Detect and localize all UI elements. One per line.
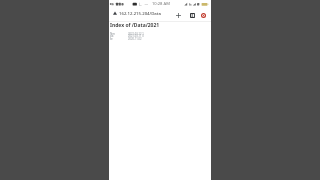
button[interactable]: Nm xyxy=(109,32,211,36)
staticText: 10:28 AM xyxy=(152,1,170,7)
staticText: 2021-03-11 0 xyxy=(128,34,144,38)
staticText: Nm xyxy=(110,32,115,36)
button[interactable]: Switch tabs xyxy=(188,11,197,20)
button[interactable]: New tab xyxy=(174,11,183,20)
staticText: te xyxy=(110,37,113,41)
button[interactable]: Search or type URL xyxy=(111,10,181,16)
staticText: 2021-03-12 1 xyxy=(128,32,144,36)
button[interactable]: pa xyxy=(109,34,211,38)
staticText: 2020-11-02 xyxy=(128,37,142,41)
button[interactable]: te xyxy=(109,37,211,41)
staticText: Index of /Data/2021 xyxy=(110,22,160,29)
staticText: pa xyxy=(110,34,114,38)
staticText: 162.12.215.204/Data xyxy=(119,10,161,16)
button[interactable]: More options xyxy=(199,11,208,20)
